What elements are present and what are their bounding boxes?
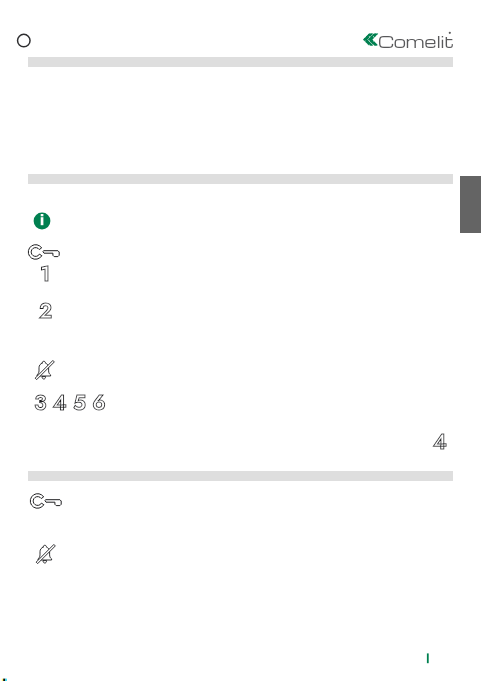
staticText: Comelit [378,30,455,52]
staticText: 4 [433,427,447,457]
button[interactable]: Information note [33,212,51,230]
staticText: 1 [40,259,51,289]
button[interactable]: Page marker [15,32,33,50]
button[interactable]: Door release key [27,243,69,263]
button[interactable]: Door release key [29,492,71,512]
staticText: 2 [39,296,53,326]
button[interactable]: Comelit logo [360,27,456,51]
staticText: 3 4 5 6 [34,388,106,418]
button[interactable]: Ringtone muted [34,359,57,382]
button[interactable]: Ringtone muted [35,543,58,566]
